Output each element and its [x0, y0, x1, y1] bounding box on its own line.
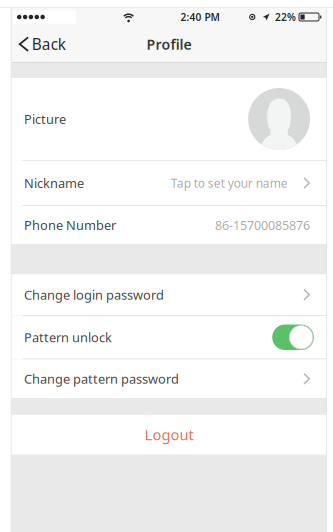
staticText: 22%	[275, 10, 296, 24]
staticText: Tap to set your name	[171, 175, 288, 191]
button[interactable]: Pattern unlock	[272, 324, 310, 350]
staticText: Nickname	[24, 174, 84, 191]
staticText: Phone Number	[24, 217, 116, 234]
staticText: Logout	[145, 425, 194, 444]
staticText: 2:40 PM	[181, 10, 220, 24]
staticText: 86-15700085876	[215, 217, 310, 233]
staticText: Back	[32, 34, 66, 54]
button[interactable]: Change login password	[12, 274, 326, 315]
button[interactable]: Change pattern password	[12, 359, 326, 398]
button[interactable]: Logout	[12, 415, 326, 454]
staticText: Pattern unlock	[24, 329, 112, 346]
button[interactable]: Picture	[12, 78, 326, 160]
button[interactable]: Back	[12, 26, 78, 62]
staticText: Picture	[24, 110, 66, 127]
staticText: Change pattern password	[24, 370, 179, 387]
staticText: Change login password	[24, 286, 164, 303]
staticText: Profile	[147, 35, 192, 54]
button[interactable]: Nickname	[12, 161, 326, 205]
